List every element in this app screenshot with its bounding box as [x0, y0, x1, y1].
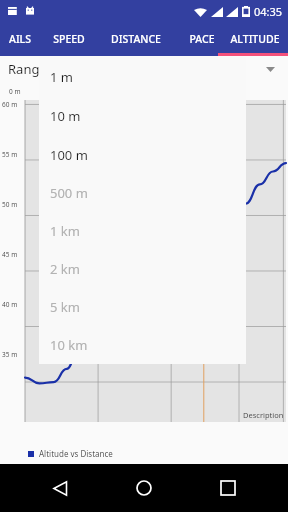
staticText: AILS — [9, 32, 31, 46]
staticText: 35 m — [2, 350, 18, 359]
button[interactable]: SPEED — [38, 22, 100, 56]
button[interactable]: PACE — [176, 22, 228, 56]
button[interactable]: DISTANCE — [97, 22, 175, 56]
staticText: 500 m — [50, 184, 88, 202]
staticText: Altitude vs Distance — [39, 448, 113, 459]
staticText: Description — [243, 410, 284, 420]
staticText: DISTANCE — [111, 32, 161, 46]
button[interactable]: 1 km — [39, 212, 246, 250]
button[interactable]: 1 m — [39, 57, 246, 96]
staticText: 0 m — [9, 87, 21, 96]
staticText: 1 km — [50, 222, 80, 240]
button[interactable]: 2 km — [39, 250, 246, 288]
button[interactable]: AILS — [0, 22, 40, 56]
staticText: 5 km — [50, 298, 80, 316]
staticText: 45 m — [2, 250, 18, 259]
staticText: ALTITUDE — [230, 32, 280, 46]
staticText: 60 m — [2, 100, 18, 109]
staticText: Range — [8, 60, 47, 78]
button[interactable]: 10 km — [39, 326, 246, 364]
staticText: 55 m — [2, 150, 18, 159]
button[interactable]: 5 km — [39, 288, 246, 326]
button[interactable]: Range dropdown — [260, 59, 280, 79]
staticText: 1 m — [50, 68, 73, 86]
staticText: 10 km — [50, 336, 88, 354]
button[interactable]: 10 m — [39, 96, 246, 135]
button[interactable]: 100 m — [39, 135, 246, 174]
staticText: SPEED — [53, 32, 85, 46]
button[interactable]: ALTITUDE — [222, 22, 288, 56]
button[interactable]: Home — [120, 464, 168, 512]
staticText: 40 m — [2, 300, 18, 309]
staticText: 2 km — [50, 260, 80, 278]
staticText: 50 m — [2, 200, 18, 209]
staticText: 100 m — [50, 146, 88, 164]
button[interactable]: Back — [36, 464, 84, 512]
staticText: 04:35 — [254, 4, 283, 19]
staticText: PACE — [189, 32, 215, 46]
button[interactable]: 500 m — [39, 174, 246, 212]
button[interactable]: Recent apps — [204, 464, 252, 512]
staticText: 10 m — [50, 107, 81, 125]
